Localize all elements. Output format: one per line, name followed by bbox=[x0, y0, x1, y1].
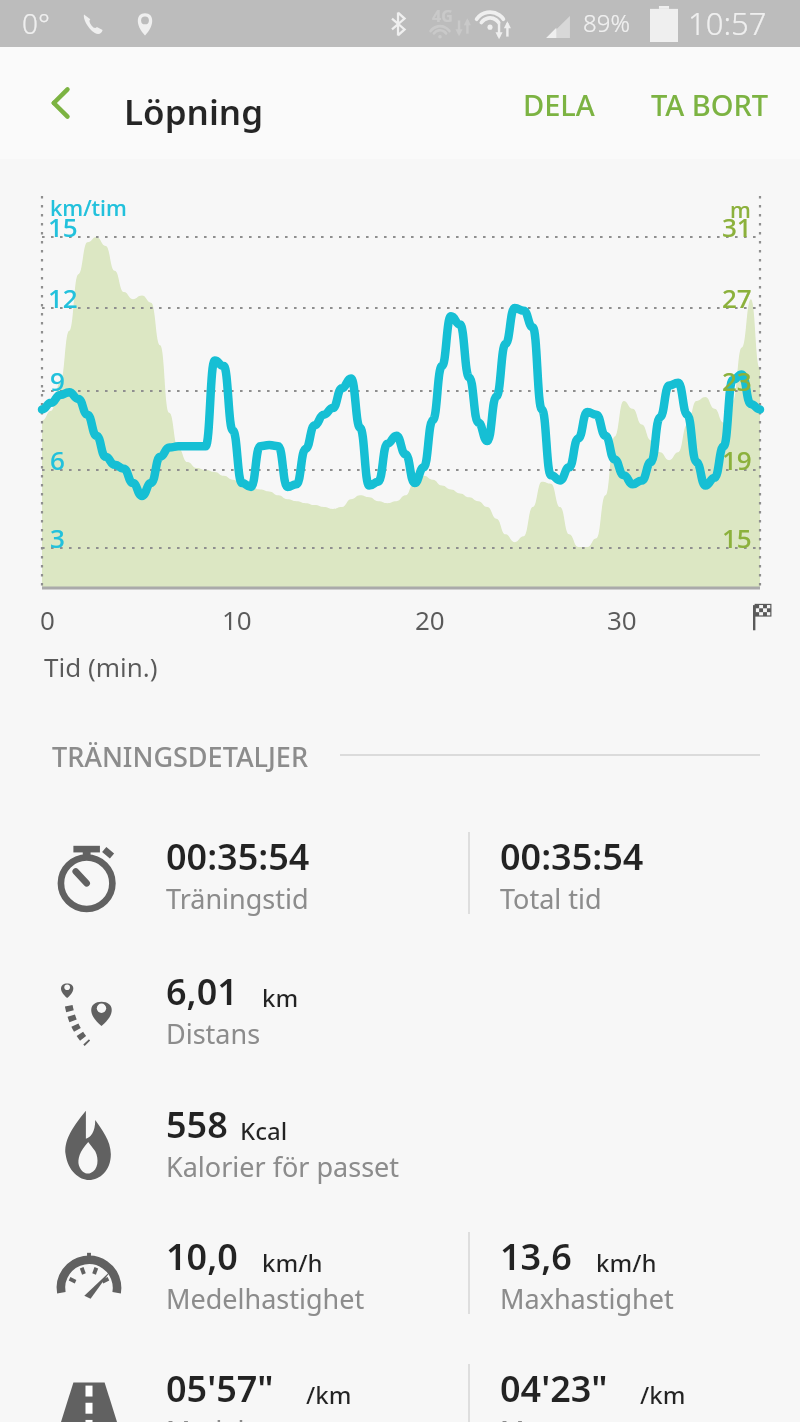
staticText: 15 bbox=[48, 209, 78, 244]
staticText: Medeltempo bbox=[166, 1412, 328, 1422]
staticText: 6 bbox=[50, 442, 65, 477]
staticText: DELA bbox=[523, 85, 595, 124]
staticText: Kcal bbox=[240, 1114, 288, 1147]
staticText: Maxhastighet bbox=[500, 1280, 674, 1317]
staticText: Tid (min.) bbox=[44, 649, 158, 684]
staticText: 9 bbox=[50, 363, 65, 398]
staticText: 15 bbox=[722, 520, 752, 555]
button[interactable]: TA BORT bbox=[630, 71, 790, 137]
button[interactable]: 6,01 bbox=[0, 955, 800, 1087]
staticText: km bbox=[262, 981, 299, 1014]
staticText: 04'23" bbox=[500, 1364, 608, 1413]
staticText: 0° bbox=[22, 4, 50, 42]
staticText: 05'57" bbox=[166, 1364, 274, 1413]
staticText: Maxtempo bbox=[500, 1412, 638, 1422]
button[interactable]: 10,0 bbox=[0, 1220, 800, 1352]
staticText: 27 bbox=[722, 280, 752, 315]
staticText: 23 bbox=[722, 363, 752, 398]
staticText: /km bbox=[640, 1378, 686, 1411]
staticText: Distans bbox=[166, 1015, 261, 1052]
staticText: 19 bbox=[722, 442, 752, 477]
staticText: TRÄNINGSDETALJER bbox=[52, 738, 308, 775]
staticText: km/tim bbox=[50, 192, 127, 222]
staticText: 4G bbox=[432, 5, 453, 27]
staticText: Medelhastighet bbox=[166, 1280, 365, 1317]
staticText: 12 bbox=[48, 280, 78, 315]
staticText: 31 bbox=[722, 209, 752, 244]
staticText: Kalorier för passet bbox=[166, 1148, 400, 1185]
staticText: m bbox=[730, 194, 751, 224]
staticText: 30 bbox=[607, 602, 637, 637]
staticText: 10:57 bbox=[688, 2, 767, 44]
staticText: Löpning bbox=[124, 88, 264, 136]
button[interactable]: 00:35:54 bbox=[0, 820, 800, 952]
staticText: 20 bbox=[415, 602, 445, 637]
staticText: Träningstid bbox=[166, 880, 309, 917]
staticText: 558 bbox=[166, 1100, 228, 1149]
button[interactable]: 558 bbox=[0, 1088, 800, 1220]
staticText: km/h bbox=[596, 1246, 657, 1279]
staticText: 6,01 bbox=[166, 967, 238, 1016]
button[interactable]: Back bbox=[28, 70, 94, 136]
staticText: 00:35:54 bbox=[500, 832, 644, 881]
staticText: 13,6 bbox=[500, 1232, 572, 1281]
staticText: 00:35:54 bbox=[166, 832, 310, 881]
staticText: Total tid bbox=[500, 880, 602, 917]
staticText: 89% bbox=[583, 6, 630, 39]
staticText: 10 bbox=[222, 602, 252, 637]
button[interactable]: DELA bbox=[496, 71, 622, 137]
staticText: km/h bbox=[262, 1246, 323, 1279]
staticText: /km bbox=[306, 1378, 352, 1411]
staticText: TA BORT bbox=[651, 85, 769, 124]
staticText: 10,0 bbox=[166, 1232, 238, 1281]
button[interactable]: 05'57" bbox=[0, 1352, 800, 1422]
staticText: 0 bbox=[40, 602, 55, 637]
staticText: 3 bbox=[50, 520, 65, 555]
